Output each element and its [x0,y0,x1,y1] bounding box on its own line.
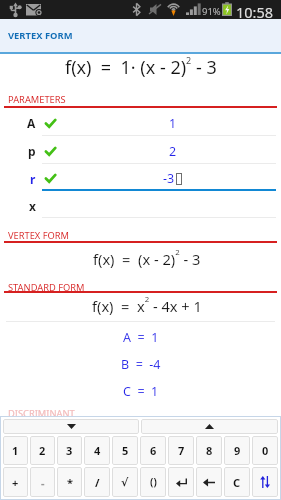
staticText: 91% [202,5,221,18]
button[interactable]: / [84,467,110,497]
button[interactable]: 8 [196,436,222,465]
button[interactable]: p [0,136,281,164]
button[interactable]: 9 [224,436,250,465]
staticText: 10:58 [236,2,274,21]
staticText: 7 [178,443,185,458]
button[interactable]: 2 [30,436,55,465]
button[interactable]: 6 [140,436,166,465]
staticText: DISCRIMINANT [8,407,75,420]
button[interactable]: C [224,467,250,497]
staticText: / [95,475,100,490]
staticText: 2 [169,143,177,160]
button[interactable]: √ [112,467,138,497]
staticText: 0 [262,443,269,458]
button[interactable]: VERTEX FORM [0,19,281,52]
button[interactable]: 3 [57,436,82,465]
staticText: 8 [206,443,213,458]
button[interactable]: 7 [168,436,194,465]
staticText: 5 [122,443,129,458]
button[interactable]: + [3,467,28,497]
staticText: 2 [39,443,46,458]
staticText: √ [121,476,129,489]
staticText: r [30,171,36,187]
button[interactable]: A [0,108,281,136]
button[interactable]: 0 [252,436,278,465]
staticText: f(x) = x2 - 4x + 1 [92,294,202,316]
staticText: 3 [66,443,73,458]
staticText: f(x) = 1· (x - 2)2 - 3 [65,54,217,79]
staticText: 4 [94,443,101,458]
button[interactable]: x [0,191,281,218]
button[interactable]: - [30,467,55,497]
staticText: C = 1 [123,383,159,400]
button[interactable]: Previous field [3,419,139,434]
staticText: PARAMETERS [8,93,66,106]
button[interactable]: 1 [3,436,28,465]
button[interactable]: 5 [112,436,138,465]
staticText: 9 [234,443,241,458]
button[interactable]: * [57,467,82,497]
button[interactable]: r [0,164,281,191]
staticText: C [233,475,241,490]
staticText: 1 [169,115,177,132]
staticText: B = -4 [121,356,161,373]
staticText: + [12,475,19,490]
staticText: VERTEX FORM [8,229,70,242]
staticText: A [27,115,36,131]
button[interactable]: 4 [84,436,110,465]
staticText: 6 [150,443,157,458]
staticText: () [150,475,157,489]
staticText: x [29,198,36,214]
staticText: p [28,143,36,159]
staticText: -3 [163,170,175,187]
button[interactable]: Switch keyboard [252,467,278,497]
staticText: f(x) = (x - 2)2 - 3 [93,247,201,269]
button[interactable]: Next field [141,419,278,434]
staticText: VERTEX FORM [8,29,73,42]
button[interactable]: Enter [168,467,194,497]
button[interactable]: Backspace [196,467,222,497]
staticText: A = 1 [123,329,159,346]
button[interactable]: () [140,467,166,497]
staticText: * [67,475,73,490]
staticText: 1 [12,443,19,458]
staticText: STANDARD FORM [8,281,85,294]
staticText: - [41,475,45,490]
